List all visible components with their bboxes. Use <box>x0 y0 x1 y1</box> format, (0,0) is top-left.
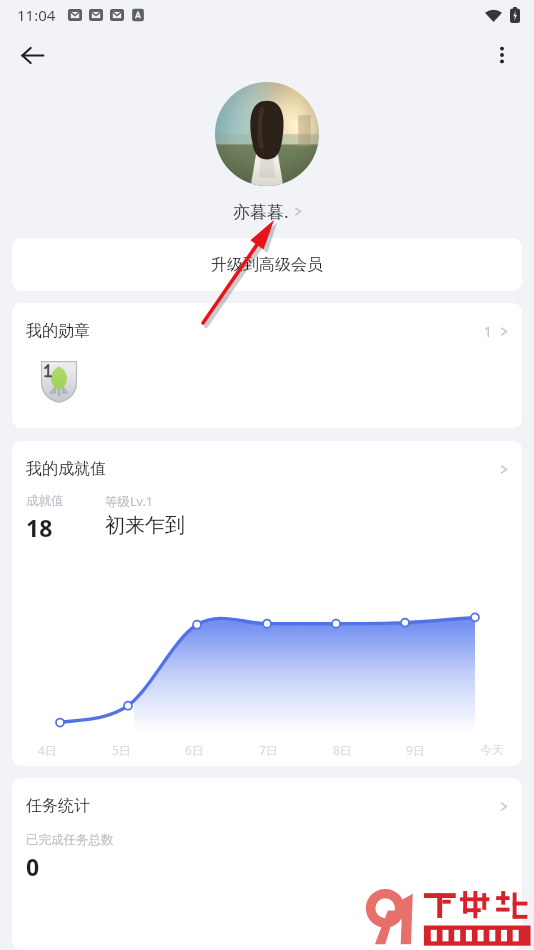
staticText: 任务统计 <box>26 796 90 816</box>
staticText: 已完成任务总数 <box>26 832 114 848</box>
staticText: 8日 <box>333 742 352 758</box>
staticText: 6日 <box>185 742 204 758</box>
button[interactable]: 任务统计 <box>12 778 522 816</box>
staticText: 5日 <box>112 742 131 758</box>
button[interactable]: Badge level 1 <box>36 357 82 403</box>
button[interactable]: 我的勋章 <box>12 303 522 428</box>
staticText: 亦暮暮. <box>233 200 289 223</box>
staticText: 1 <box>484 322 493 341</box>
button[interactable]: Back <box>10 33 54 77</box>
staticText: 我的勋章 <box>26 321 90 341</box>
staticText: 11:04 <box>17 5 56 25</box>
button[interactable]: More options <box>480 33 524 77</box>
button[interactable]: 升级到高级会员 <box>12 238 522 291</box>
staticText: 升级到高级会员 <box>211 255 323 275</box>
staticText: 成就值 <box>26 493 64 509</box>
staticText: 今天 <box>480 742 504 757</box>
staticText: 等级Lv.1 <box>105 493 153 510</box>
button[interactable]: 我的成就值 <box>12 441 522 479</box>
staticText: 7日 <box>259 742 278 758</box>
staticText: 4日 <box>38 742 57 758</box>
staticText: 9日 <box>406 742 425 758</box>
staticText: 初来乍到 <box>105 513 185 538</box>
button[interactable]: 亦暮暮. <box>229 198 306 225</box>
staticText: 0 <box>26 851 40 882</box>
button[interactable]: Profile photo <box>215 82 319 186</box>
staticText: 18 <box>26 512 53 543</box>
staticText: 我的成就值 <box>26 459 106 479</box>
